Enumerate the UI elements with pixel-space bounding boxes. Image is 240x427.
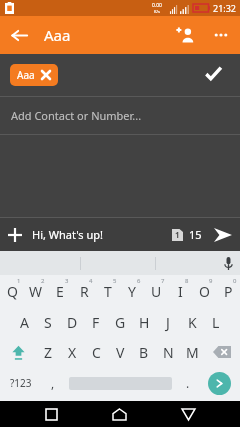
button[interactable]: A	[12, 307, 36, 337]
button[interactable]: Q	[0, 275, 24, 307]
staticText: N	[163, 343, 174, 362]
staticText: 7	[161, 277, 165, 285]
button[interactable]: P	[216, 275, 240, 307]
staticText: 0.00	[152, 2, 162, 9]
button[interactable]: N	[156, 337, 180, 367]
button[interactable]: Confirm	[196, 58, 230, 92]
button[interactable]: O	[192, 275, 216, 307]
staticText: 1	[17, 277, 21, 285]
button[interactable]: Recents	[34, 401, 68, 427]
button[interactable]: V	[108, 337, 132, 367]
staticText: E	[56, 282, 64, 301]
staticText: K/s	[154, 9, 160, 14]
button[interactable]: D	[60, 307, 84, 337]
button[interactable]: G	[108, 307, 132, 337]
staticText: S	[44, 313, 52, 332]
staticText: J	[166, 313, 170, 332]
button[interactable]: Add attachment	[0, 220, 30, 250]
staticText: L	[212, 313, 220, 332]
staticText: F	[92, 313, 100, 332]
staticText: A	[20, 313, 29, 332]
staticText: 4	[89, 277, 93, 285]
staticText: Z	[44, 343, 53, 362]
staticText: W	[29, 282, 43, 301]
staticText: 9	[209, 277, 213, 285]
button[interactable]: U	[144, 275, 168, 307]
staticText: Aaa	[44, 25, 71, 45]
staticText: Hi, What's up!	[32, 227, 103, 242]
staticText: Add Contact or Number...	[11, 108, 142, 123]
button[interactable]: Add contact	[166, 16, 204, 54]
staticText: 3	[65, 277, 69, 285]
button[interactable]: Y	[120, 275, 144, 307]
staticText: M	[186, 343, 199, 362]
button[interactable]: I	[168, 275, 192, 307]
staticText: 2	[41, 277, 45, 285]
staticText: ?123	[10, 376, 32, 390]
button[interactable]: ?123	[0, 367, 41, 399]
staticText: Q	[7, 282, 18, 301]
button[interactable]: L	[204, 307, 228, 337]
staticText: 5	[113, 277, 117, 285]
staticText: 0	[233, 277, 237, 285]
button[interactable]: Back	[0, 16, 38, 54]
staticText: P	[224, 282, 233, 301]
button[interactable]: Voice input	[216, 251, 240, 275]
staticText: 6	[137, 277, 141, 285]
button[interactable]: R	[72, 275, 96, 307]
staticText: ,	[51, 375, 55, 391]
button[interactable]: Shift	[0, 337, 36, 367]
button[interactable]: Z	[36, 337, 60, 367]
button[interactable]: Space	[64, 367, 176, 399]
button[interactable]: C	[84, 337, 108, 367]
staticText: 21:32	[213, 2, 237, 14]
button[interactable]: J	[156, 307, 180, 337]
button[interactable]: .	[176, 367, 199, 399]
staticText: I	[178, 282, 183, 301]
button[interactable]: S	[36, 307, 60, 337]
button[interactable]: K	[180, 307, 204, 337]
staticText: D	[67, 313, 78, 332]
staticText: Aaa	[17, 68, 35, 82]
button[interactable]: Backspace	[204, 337, 240, 367]
button[interactable]: F	[84, 307, 108, 337]
staticText: Y	[128, 282, 136, 301]
staticText: 15	[189, 227, 202, 242]
staticText: C	[92, 343, 101, 362]
staticText: U	[151, 282, 162, 301]
button[interactable]: M	[180, 337, 204, 367]
staticText: O	[199, 282, 210, 301]
button[interactable]: Back	[171, 401, 205, 427]
button[interactable]: Enter	[199, 367, 240, 399]
staticText: 8	[185, 277, 189, 285]
staticText: X	[68, 343, 77, 362]
button[interactable]: E	[48, 275, 72, 307]
button[interactable]: B	[132, 337, 156, 367]
button[interactable]: More options	[204, 18, 238, 52]
button[interactable]: Home	[102, 401, 136, 427]
button[interactable]: H	[132, 307, 156, 337]
button[interactable]: Add Contact or Number...	[0, 97, 240, 134]
staticText: 1	[175, 229, 180, 240]
button[interactable]: W	[24, 275, 48, 307]
button[interactable]: Send	[208, 220, 238, 250]
staticText: B	[139, 343, 149, 362]
button[interactable]: ,	[41, 367, 64, 399]
staticText: .	[186, 375, 190, 391]
staticText: G	[115, 313, 126, 332]
staticText: V	[116, 343, 125, 362]
button[interactable]: T	[96, 275, 120, 307]
staticText: T	[104, 282, 112, 301]
button[interactable]: Aaa	[10, 64, 58, 86]
staticText: K	[188, 313, 197, 332]
button[interactable]: X	[60, 337, 84, 367]
staticText: H	[139, 313, 150, 332]
staticText: R	[80, 282, 89, 301]
